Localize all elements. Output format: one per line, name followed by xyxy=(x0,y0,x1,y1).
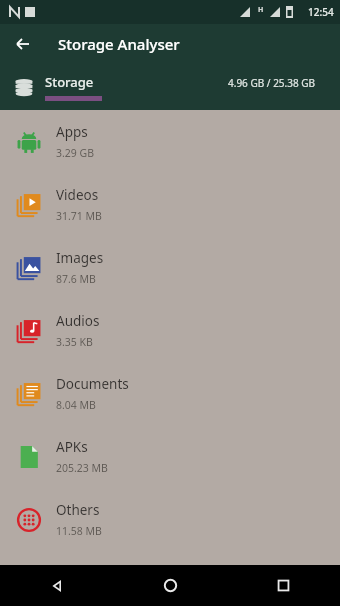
button[interactable]: Others xyxy=(0,488,340,551)
staticText: Documents xyxy=(56,375,129,393)
button[interactable]: Home xyxy=(114,565,227,606)
staticText: Images xyxy=(56,249,104,267)
button[interactable]: Apps xyxy=(0,110,340,173)
staticText: 3.35 KB xyxy=(56,335,93,349)
staticText: APKs xyxy=(56,438,88,456)
staticText: 205.23 MB xyxy=(56,461,108,475)
button[interactable]: APKs xyxy=(0,425,340,488)
button[interactable]: Recent apps xyxy=(227,565,340,606)
staticText: H xyxy=(258,5,264,15)
staticText: Audios xyxy=(56,312,100,330)
staticText: Videos xyxy=(56,186,99,204)
staticText: Storage Analyser xyxy=(58,34,180,54)
staticText: Others xyxy=(56,501,100,519)
button[interactable]: Back xyxy=(10,31,36,57)
staticText: 12:54 xyxy=(308,5,334,19)
staticText: 31.71 MB xyxy=(56,209,102,223)
button[interactable]: Audios xyxy=(0,299,340,362)
button[interactable]: Storage xyxy=(0,64,340,110)
staticText: Storage xyxy=(45,73,94,91)
staticText: Apps xyxy=(56,123,88,141)
staticText: 87.6 MB xyxy=(56,272,96,286)
button[interactable]: Images xyxy=(0,236,340,299)
button[interactable]: Videos xyxy=(0,173,340,236)
staticText: 4.96 GB / 25.38 GB xyxy=(228,76,316,90)
button[interactable]: Documents xyxy=(0,362,340,425)
button[interactable]: Back xyxy=(0,565,114,606)
staticText: 8.04 MB xyxy=(56,398,96,412)
staticText: 3.29 GB xyxy=(56,146,95,160)
staticText: 11.58 MB xyxy=(56,524,102,538)
